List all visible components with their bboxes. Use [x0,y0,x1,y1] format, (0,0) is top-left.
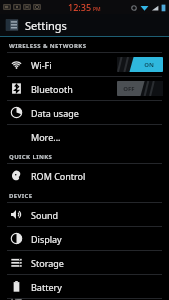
staticText: WIRELESS & NETWORKS [9,42,87,50]
button[interactable]: More... [0,125,169,148]
staticText: Storage [31,257,64,269]
staticText: OFF [123,85,135,93]
staticText: QUICK LINKS [9,153,53,161]
staticText: PM [93,6,101,13]
button[interactable]: Off [117,81,163,96]
staticText: ON [144,61,154,69]
button[interactable]: Display [0,227,169,250]
button[interactable]: Storage [0,251,169,274]
button[interactable]: On [117,57,163,72]
staticText: Wi-Fi [31,59,52,71]
button[interactable]: Apps [0,299,169,300]
staticText: More... [31,131,61,143]
staticText: Battery [31,281,62,293]
button[interactable]: Wi-Fi [0,53,169,76]
button[interactable]: ROM Control [0,164,169,187]
button[interactable]: Sound [0,203,169,226]
staticText: ROM Control [31,170,86,182]
button[interactable]: Bluetooth [0,77,169,100]
button[interactable]: Battery [0,275,169,298]
staticText: Display [31,233,62,245]
button[interactable]: Data usage [0,101,169,124]
staticText: Sound [31,209,59,221]
staticText: Settings [25,18,67,33]
staticText: Data usage [31,107,79,119]
staticText: DEVICE [9,192,33,200]
staticText: Bluetooth [31,83,73,95]
staticText: 12:35 [68,1,92,13]
button[interactable]: Settings [0,14,169,36]
